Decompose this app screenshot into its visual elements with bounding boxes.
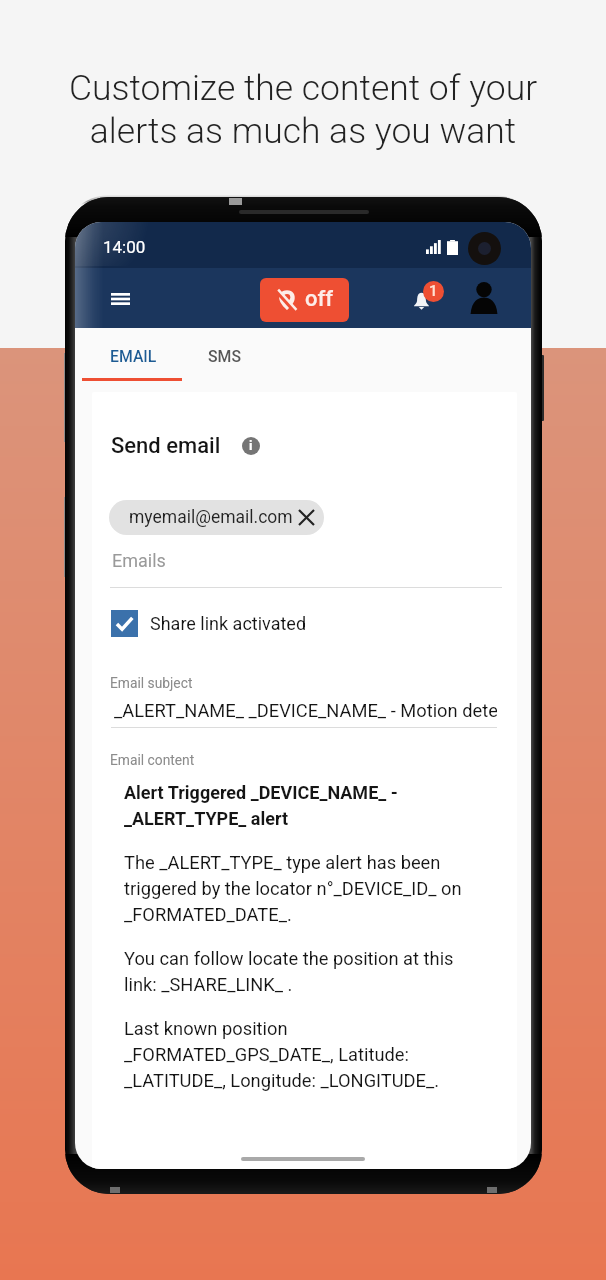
- button[interactable]: EMAIL: [82, 328, 182, 381]
- staticText: myemail@email.com: [129, 507, 293, 528]
- staticText: off: [305, 286, 334, 312]
- button[interactable]: Menu: [105, 284, 135, 314]
- staticText: Email subject: [110, 675, 193, 691]
- staticText: Alert Triggered _DEVICE_NAME_ - _ALERT_T…: [124, 782, 474, 829]
- staticText: SMS: [208, 347, 241, 366]
- staticText: _ALERT_NAME_ _DEVICE_NAME_ - Motion dete…: [114, 700, 497, 721]
- button[interactable]: Share link activated: [111, 607, 307, 639]
- staticText: Share link activated: [150, 613, 307, 634]
- button[interactable]: off: [260, 278, 349, 322]
- staticText: Emails: [112, 550, 166, 571]
- staticText: Send email: [111, 433, 221, 459]
- staticText: 1: [429, 282, 438, 300]
- staticText: 14:00: [103, 237, 146, 257]
- staticText: Customize the content of your alerts as …: [0, 67, 606, 152]
- staticText: The _ALERT_TYPE_ type alert has been tri…: [124, 852, 474, 925]
- staticText: i: [249, 438, 253, 453]
- button[interactable]: Notifications: [407, 272, 459, 324]
- button[interactable]: Info: [242, 437, 260, 455]
- button[interactable]: myemail@email.com: [129, 500, 314, 535]
- button[interactable]: SMS: [182, 328, 274, 381]
- staticText: Last known position _FORMATED_GPS_DATE_,…: [124, 1018, 474, 1091]
- staticText: Email content: [110, 752, 195, 768]
- button[interactable]: Profile: [463, 276, 505, 318]
- staticText: You can follow locate the position at th…: [124, 948, 474, 995]
- staticText: EMAIL: [110, 347, 157, 366]
